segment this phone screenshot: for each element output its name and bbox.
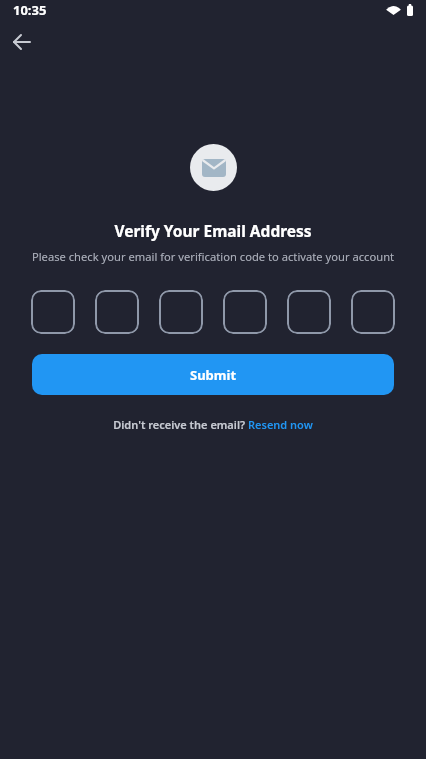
button[interactable] [8, 28, 36, 56]
staticText: Please check your email for verification… [0, 249, 426, 264]
button[interactable] [287, 290, 331, 334]
staticText: Verify Your Email Address [0, 220, 426, 241]
button[interactable] [31, 290, 75, 334]
staticText: Didn't receive the email? Resend now [113, 417, 313, 432]
button[interactable]: Didn't receive the email? Resend now [113, 417, 313, 432]
staticText: Submit [190, 366, 237, 384]
button[interactable] [159, 290, 203, 334]
staticText: 10:35 [13, 1, 47, 19]
button[interactable] [95, 290, 139, 334]
button[interactable] [223, 290, 267, 334]
button[interactable] [351, 290, 395, 334]
button[interactable]: Submit [32, 354, 394, 395]
